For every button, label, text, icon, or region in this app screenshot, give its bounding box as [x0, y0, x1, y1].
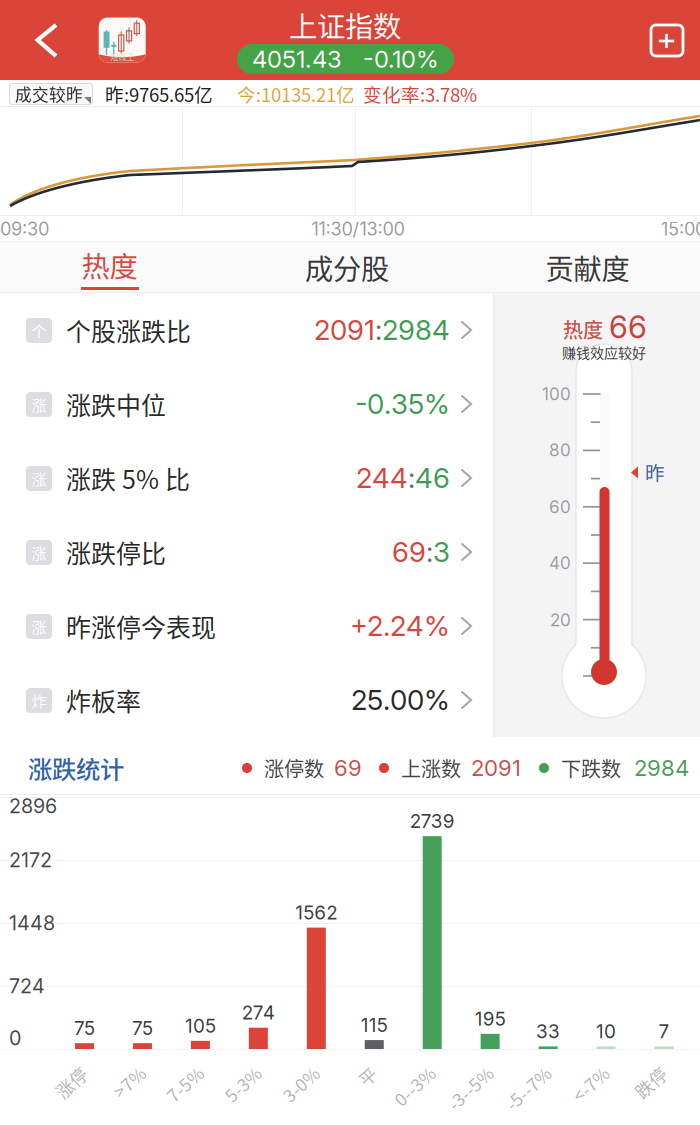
staticText: 7 [658, 1020, 669, 1043]
staticText: 炸 [31, 690, 46, 711]
staticText: 115 [361, 1014, 388, 1036]
staticText: 涨跌停比 [66, 534, 166, 570]
button[interactable]: 成分股 [233, 242, 467, 293]
staticText: -5--7% [494, 1057, 548, 1083]
button[interactable]: 炸 [0, 663, 494, 737]
staticText: 66 [609, 308, 647, 346]
staticText: 涨停 [48, 1057, 84, 1083]
staticText: 46 [415, 461, 450, 495]
staticText: 60 [549, 497, 571, 517]
button[interactable]: 涨 [0, 441, 494, 515]
staticText: 80 [549, 440, 571, 460]
staticText: : [408, 461, 415, 495]
staticText: 11:30/13:00 [311, 218, 404, 240]
button[interactable]: 个 [0, 293, 494, 367]
staticText: +2.24% [350, 609, 450, 643]
staticText: 今:10135.21亿 [237, 80, 355, 107]
staticText: 1562 [295, 901, 337, 924]
staticText: 贡献度 [545, 247, 629, 288]
staticText: : [375, 313, 382, 347]
staticText: 赚钱效应较好 [562, 342, 646, 362]
staticText: 热度 [81, 244, 137, 285]
staticText: 昨 [645, 458, 665, 486]
staticText: : [426, 535, 433, 569]
staticText: 昨涨停今表现 [66, 608, 216, 644]
button[interactable]: 涨跌统计 [28, 752, 128, 784]
staticText: 昨:9765.65亿 [105, 80, 213, 107]
staticText: -3--5% [436, 1057, 490, 1083]
button[interactable]: Add to watchlist [645, 19, 689, 62]
staticText: 1448 [9, 911, 55, 935]
staticText: 热度 [563, 314, 603, 343]
staticText: 2739 [410, 810, 455, 833]
staticText: 炸板率 [66, 682, 141, 718]
button[interactable]: 贡献度 [467, 242, 700, 293]
staticText: 4051.43 -0.10% [252, 45, 439, 73]
button[interactable]: 涨 [0, 589, 494, 663]
staticText: 2984 [382, 313, 450, 347]
staticText: 33 [536, 1020, 560, 1043]
staticText: 15:00 [661, 218, 700, 240]
staticText: 短线王 [110, 51, 134, 62]
staticText: 3 [433, 535, 450, 569]
staticText: 3-0% [274, 1057, 316, 1083]
staticText: 成交较昨 [15, 82, 83, 106]
staticText: 涨跌 5% 比 [66, 460, 190, 496]
staticText: 69 [392, 535, 426, 569]
staticText: 涨停数 [264, 753, 324, 782]
staticText: 涨 [31, 394, 46, 415]
staticText: <-7% [564, 1057, 606, 1083]
staticText: 2984 [634, 755, 689, 781]
staticText: 195 [475, 1007, 506, 1030]
button[interactable]: 涨 [0, 367, 494, 441]
button[interactable]: 热度 [0, 242, 233, 293]
staticText: 平 [356, 1057, 374, 1083]
staticText: 涨 [31, 468, 46, 489]
staticText: 105 [185, 1014, 216, 1037]
staticText: 涨跌统计 [28, 750, 124, 786]
staticText: 变化率:3.78% [363, 80, 477, 107]
staticText: 75 [74, 1017, 95, 1040]
staticText: 244 [356, 461, 408, 495]
staticText: 7-5% [158, 1057, 200, 1083]
staticText: 724 [9, 974, 45, 998]
staticText: 2091 [314, 313, 375, 347]
button[interactable]: 短线王 [99, 17, 146, 62]
staticText: 5-3% [216, 1057, 258, 1083]
staticText: 个股涨跌比 [66, 312, 191, 348]
staticText: 2172 [9, 848, 52, 872]
staticText: 上涨数 [401, 753, 461, 782]
staticText: 100 [542, 384, 571, 404]
staticText: 40 [549, 553, 571, 573]
staticText: 2091 [471, 755, 521, 781]
staticText: 个 [31, 320, 46, 341]
staticText: 2896 [9, 794, 57, 818]
staticText: 274 [242, 1001, 275, 1024]
staticText: 10 [596, 1020, 616, 1043]
staticText: 69 [334, 755, 362, 781]
staticText: 跌停 [628, 1057, 664, 1083]
button[interactable]: Back [20, 14, 72, 66]
staticText: 25.00% [351, 683, 450, 717]
staticText: 涨跌中位 [66, 386, 166, 422]
button[interactable]: 涨 [0, 515, 494, 589]
button[interactable]: 成交较昨 [9, 83, 93, 105]
staticText: -0.35% [355, 387, 450, 421]
staticText: 涨 [31, 616, 46, 637]
staticText: 09:30 [0, 218, 49, 240]
staticText: 75 [132, 1017, 153, 1040]
staticText: 20 [550, 610, 571, 630]
staticText: >7% [106, 1057, 142, 1083]
staticText: 涨 [31, 542, 46, 563]
staticText: 成分股 [305, 247, 389, 288]
staticText: 0--3% [384, 1057, 432, 1083]
staticText: 0 [9, 1026, 21, 1050]
staticText: 下跌数 [561, 753, 621, 782]
staticText: 上证指数 [289, 4, 401, 46]
